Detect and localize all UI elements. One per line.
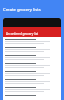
staticText: An ordered grocery list <box>6 32 39 36</box>
staticText: Create grocery lists <box>3 7 41 13</box>
